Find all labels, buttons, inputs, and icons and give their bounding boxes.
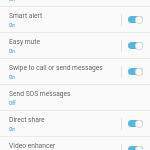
staticText: Easy mute xyxy=(9,38,40,46)
staticText: Off xyxy=(9,101,16,107)
staticText: On xyxy=(9,49,15,55)
button[interactable]: Easy mute switch xyxy=(127,40,144,51)
button[interactable] xyxy=(0,111,150,136)
button[interactable]: Direct share switch xyxy=(127,118,144,129)
button[interactable] xyxy=(0,7,150,32)
staticText: Send SOS messages xyxy=(9,90,71,98)
button[interactable] xyxy=(0,137,150,150)
staticText: Direct share xyxy=(9,116,45,124)
staticText: On xyxy=(9,75,15,81)
button[interactable]: Smart alert switch xyxy=(127,14,144,25)
staticText: On xyxy=(9,23,15,29)
staticText: Video enhancer xyxy=(9,142,56,150)
button[interactable]: Swipe to call or send messages switch xyxy=(127,66,144,77)
button[interactable] xyxy=(0,33,150,58)
staticText: On xyxy=(9,127,15,133)
staticText: On xyxy=(9,0,15,3)
button[interactable] xyxy=(0,85,150,110)
staticText: Swipe to call or send messages xyxy=(9,64,103,72)
staticText: Smart alert xyxy=(9,12,43,20)
button[interactable] xyxy=(0,59,150,84)
button[interactable]: Video enhancer switch xyxy=(127,144,144,150)
